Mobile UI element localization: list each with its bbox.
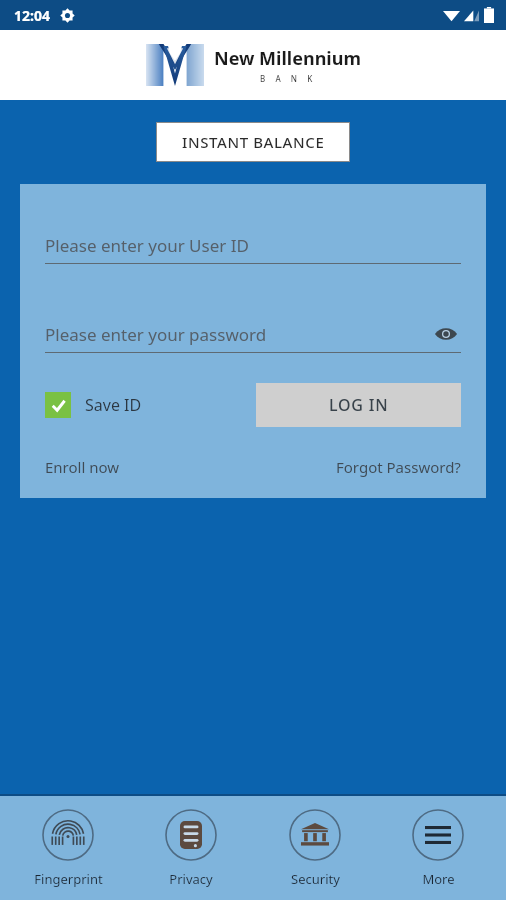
button[interactable]: Save ID	[45, 392, 142, 418]
staticText: 12:04	[14, 6, 50, 25]
staticText: Please enter your password	[45, 323, 267, 346]
staticText: Fingerprint	[34, 870, 103, 888]
staticText: B A N K	[260, 73, 315, 84]
button[interactable]: Please enter your User ID	[45, 226, 461, 264]
staticText: Privacy	[169, 870, 213, 888]
staticText: Save ID	[85, 394, 142, 416]
button[interactable]: Security	[260, 809, 370, 888]
button[interactable]: Please enter your password	[45, 315, 461, 353]
button[interactable]: Forgot Password?	[336, 457, 461, 477]
staticText: Forgot Password?	[336, 457, 461, 477]
staticText: INSTANT BALANCE	[182, 132, 325, 152]
staticText: Please enter your User ID	[45, 234, 249, 257]
staticText: LOG IN	[329, 394, 389, 416]
staticText: Security	[291, 870, 340, 888]
button[interactable]: Privacy	[136, 809, 246, 888]
button[interactable]: Enroll now	[45, 457, 120, 477]
button[interactable]: LOG IN	[256, 383, 461, 427]
button[interactable]: More	[383, 809, 493, 888]
staticText: Enroll now	[45, 457, 120, 477]
button[interactable]: INSTANT BALANCE	[156, 122, 350, 162]
staticText: More	[422, 870, 455, 888]
staticText: New Millennium	[214, 46, 361, 71]
button[interactable]: Fingerprint	[13, 809, 123, 888]
button[interactable]: Show password	[431, 319, 461, 349]
